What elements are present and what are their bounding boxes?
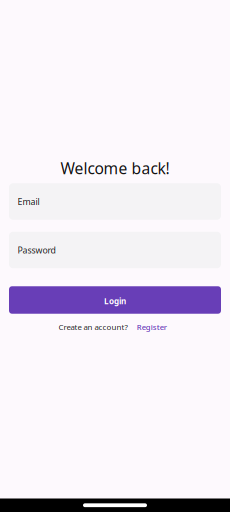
staticText: Password (17, 244, 55, 256)
button[interactable]: Login (9, 286, 221, 314)
staticText: Login (104, 296, 126, 307)
staticText: Register (137, 322, 167, 332)
button[interactable]: Register (137, 322, 167, 332)
button[interactable]: Password (9, 232, 221, 268)
button[interactable]: Email (9, 183, 221, 220)
staticText: Email (17, 195, 39, 207)
staticText: Create an account? (58, 321, 127, 332)
staticText: Welcome back! (60, 157, 169, 179)
